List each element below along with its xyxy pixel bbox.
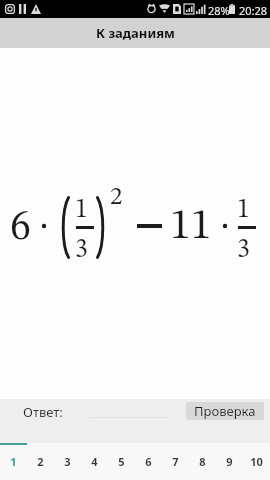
button[interactable]: 3 <box>54 443 81 480</box>
button[interactable]: 10 <box>243 443 270 480</box>
button[interactable]: 9 <box>216 443 243 480</box>
staticText: 1 <box>237 197 250 223</box>
staticText: 9 <box>226 454 233 469</box>
button[interactable]: 2 <box>27 443 54 480</box>
staticText: 6 <box>10 207 31 249</box>
staticText: 6 <box>145 454 152 469</box>
button[interactable]: 5 <box>108 443 135 480</box>
button[interactable]: К заданиям <box>0 18 270 48</box>
staticText: 1 <box>75 197 88 223</box>
staticText: Ответ: <box>23 403 63 421</box>
staticText: 3 <box>237 237 250 263</box>
staticText: 2 <box>37 454 44 469</box>
staticText: 10 <box>250 454 263 469</box>
staticText: 5 <box>118 454 125 469</box>
staticText: 2 <box>110 185 123 210</box>
button[interactable]: 8 <box>189 443 216 480</box>
button[interactable]: 1 <box>0 443 27 480</box>
staticText: 7 <box>172 454 179 469</box>
staticText: 11 <box>170 206 212 248</box>
button[interactable]: Проверка <box>186 402 264 420</box>
staticText: 28% <box>208 3 230 18</box>
staticText: 3 <box>64 454 71 469</box>
button[interactable]: 7 <box>162 443 189 480</box>
staticText: Проверка <box>194 402 256 420</box>
staticText: К заданиям <box>96 24 175 42</box>
staticText: 4 <box>91 454 98 469</box>
staticText: 3 <box>75 237 88 263</box>
button[interactable] <box>89 402 169 418</box>
staticText: 1 <box>10 454 17 469</box>
staticText: 8 <box>199 454 206 469</box>
button[interactable]: 6 <box>135 443 162 480</box>
button[interactable]: 4 <box>81 443 108 480</box>
staticText: 20:28 <box>239 3 268 18</box>
